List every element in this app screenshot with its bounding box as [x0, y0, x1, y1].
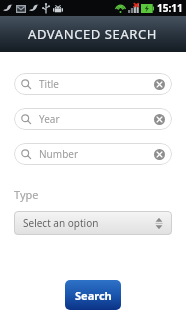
button[interactable]: Search — [65, 280, 121, 310]
staticText: Year — [39, 112, 154, 126]
staticText: ADVANCED SEARCH — [28, 25, 158, 43]
button[interactable]: Clear Number — [154, 149, 165, 160]
staticText: Type — [14, 187, 39, 202]
staticText: Number — [39, 147, 154, 161]
button[interactable]: Clear Title — [154, 79, 165, 90]
staticText: Title — [39, 77, 154, 91]
button[interactable]: Year — [14, 108, 172, 130]
staticText: Search — [75, 288, 112, 303]
button[interactable]: Title — [14, 73, 172, 95]
button[interactable]: Select an option — [14, 211, 172, 235]
button[interactable]: Number — [14, 143, 172, 165]
staticText: Select an option — [23, 216, 155, 230]
staticText: 15:11 — [157, 1, 183, 15]
button[interactable]: Clear Year — [154, 114, 165, 125]
